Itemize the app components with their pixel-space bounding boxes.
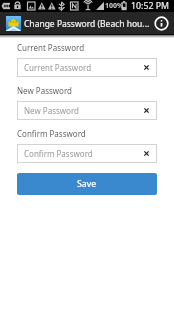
staticText: 10:52 PM (131, 0, 170, 12)
button[interactable]: Info (151, 13, 171, 33)
staticText: New Password (17, 85, 72, 96)
staticText: Current Password (17, 42, 85, 53)
button[interactable]: Current Password (17, 58, 157, 77)
staticText: Confirm Password (24, 148, 93, 159)
staticText: Confirm Password (17, 128, 86, 139)
staticText: New Password (24, 105, 79, 116)
staticText: Save (77, 178, 97, 190)
button[interactable]: Save (17, 173, 157, 195)
button[interactable]: Confirm Password (17, 144, 157, 163)
staticText: 100% (105, 1, 124, 11)
staticText: Current Password (24, 62, 92, 73)
button[interactable]: New Password (17, 101, 157, 120)
staticText: Change Password (Beach hou... (24, 18, 151, 30)
